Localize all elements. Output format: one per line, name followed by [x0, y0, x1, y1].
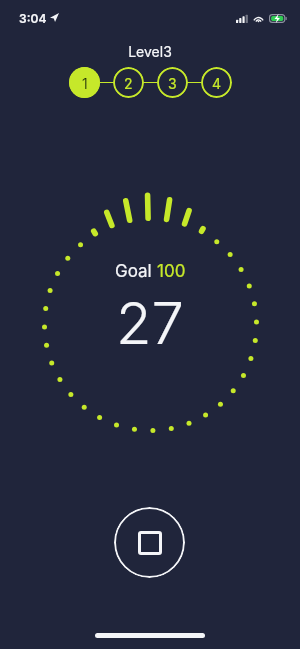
- button[interactable]: 1: [69, 67, 100, 98]
- button[interactable]: 3: [157, 67, 188, 98]
- staticText: 2: [124, 75, 133, 92]
- staticText: 3: [168, 75, 177, 92]
- staticText: Goal: [115, 261, 157, 282]
- staticText: 1: [82, 75, 88, 92]
- staticText: Level3: [128, 43, 172, 59]
- button[interactable]: 4: [201, 67, 232, 98]
- button[interactable]: Stop: [114, 507, 185, 578]
- staticText: 100: [157, 261, 186, 282]
- staticText: 4: [212, 75, 222, 92]
- button[interactable]: 2: [113, 67, 144, 98]
- staticText: 3:04: [19, 11, 47, 26]
- staticText: 27: [116, 288, 185, 358]
